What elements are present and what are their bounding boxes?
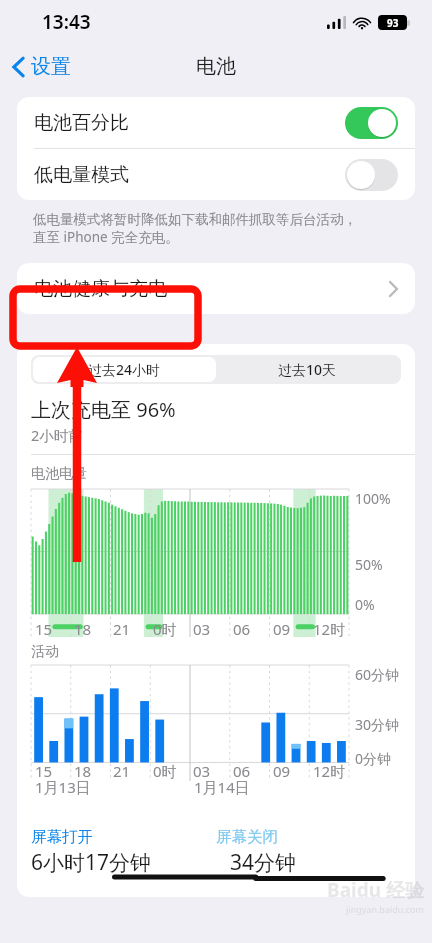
staticText: 电池 [196, 54, 236, 79]
staticText: 6小时17分钟 [31, 848, 152, 877]
staticText: 直至 iPhone 完全充电。 [33, 228, 179, 246]
staticText: 过去10天 [278, 360, 337, 379]
staticText: 30分钟 [355, 715, 400, 734]
staticText: 电池百分比 [34, 111, 129, 135]
staticText: 15 [35, 761, 53, 781]
staticText: 2小时前 [31, 425, 83, 445]
staticText: 0分钟 [355, 749, 392, 768]
staticText: 13:43 [42, 9, 91, 35]
staticText: 03 [193, 761, 211, 781]
staticText: 屏幕打开 [31, 827, 93, 847]
staticText: 0% [355, 595, 375, 614]
staticText: 100% [355, 489, 391, 508]
staticText: Baidu 经验 [327, 877, 424, 903]
staticText: 34分钟 [230, 848, 297, 877]
staticText: 06 [233, 761, 251, 781]
button[interactable]: 过去24小时 [33, 357, 216, 382]
staticText: 上次充电至 96% [31, 396, 176, 423]
staticText: 12时 [313, 619, 346, 637]
button[interactable]: 电池健康与充电 [17, 263, 415, 314]
staticText: 12时 [313, 761, 346, 781]
staticText: 电池健康与充电 [34, 277, 167, 301]
staticText: 18 [74, 761, 92, 781]
staticText: 低电量模式 [34, 163, 129, 187]
staticText: 15 [35, 619, 53, 637]
staticText: 0时 [153, 619, 177, 637]
staticText: 活动 [31, 643, 59, 661]
staticText: 21 [113, 761, 131, 781]
button[interactable]: 设置 [0, 50, 79, 83]
staticText: 0时 [153, 761, 177, 781]
staticText: 低电量模式将暂时降低如下载和邮件抓取等后台活动， [33, 211, 357, 228]
staticText: jingyan.baidu.com [346, 903, 424, 915]
staticText: 设置 [31, 54, 71, 79]
staticText: 03 [193, 619, 211, 637]
button[interactable]: On [345, 107, 398, 139]
staticText: 60分钟 [355, 665, 400, 684]
staticText: 过去24小时 [88, 360, 161, 379]
button[interactable]: Off [345, 159, 398, 191]
staticText: 1月13日 [35, 777, 91, 797]
staticText: 21 [113, 619, 131, 637]
staticText: 09 [273, 619, 291, 637]
staticText: 06 [233, 619, 251, 637]
button[interactable]: 电池百分比 [17, 97, 415, 148]
staticText: 93 [387, 16, 399, 30]
staticText: 09 [273, 761, 291, 781]
staticText: 1月14日 [194, 777, 250, 797]
button[interactable]: 低电量模式 [17, 149, 415, 200]
staticText: 屏幕关闭 [216, 827, 278, 847]
button[interactable]: 过去10天 [216, 357, 399, 382]
staticText: 电池电量 [31, 465, 87, 483]
staticText: 18 [74, 619, 92, 637]
staticText: 50% [355, 555, 383, 574]
